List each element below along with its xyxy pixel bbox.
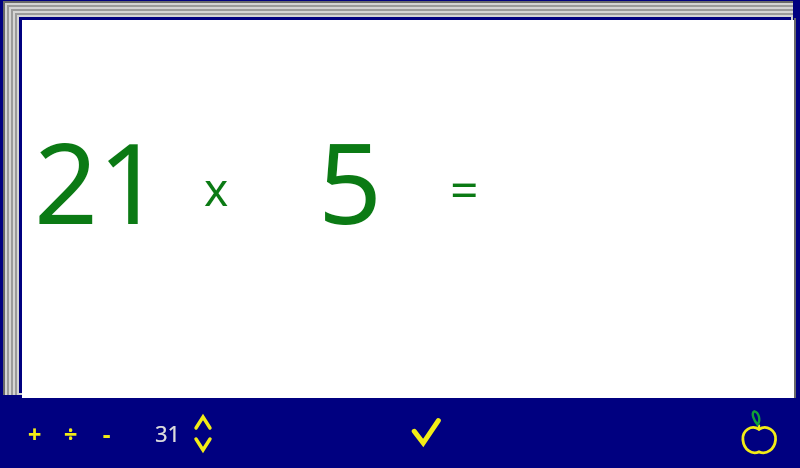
- button[interactable]: Increase: [193, 414, 213, 430]
- button[interactable]: Division: [58, 418, 84, 448]
- staticText: 21: [34, 104, 163, 257]
- button[interactable]: Apple: [732, 406, 786, 460]
- staticText: =: [450, 155, 479, 223]
- staticText: ÷: [64, 418, 78, 448]
- staticText: x: [204, 157, 229, 220]
- staticText: 31: [155, 418, 181, 448]
- button[interactable]: Addition: [22, 418, 48, 448]
- button[interactable]: Decrease: [193, 436, 213, 452]
- staticText: -: [103, 418, 111, 448]
- staticText: +: [28, 418, 42, 448]
- button[interactable]: Subtraction: [94, 418, 120, 448]
- staticText: 5: [318, 104, 383, 257]
- button[interactable]: Check answer: [405, 412, 447, 454]
